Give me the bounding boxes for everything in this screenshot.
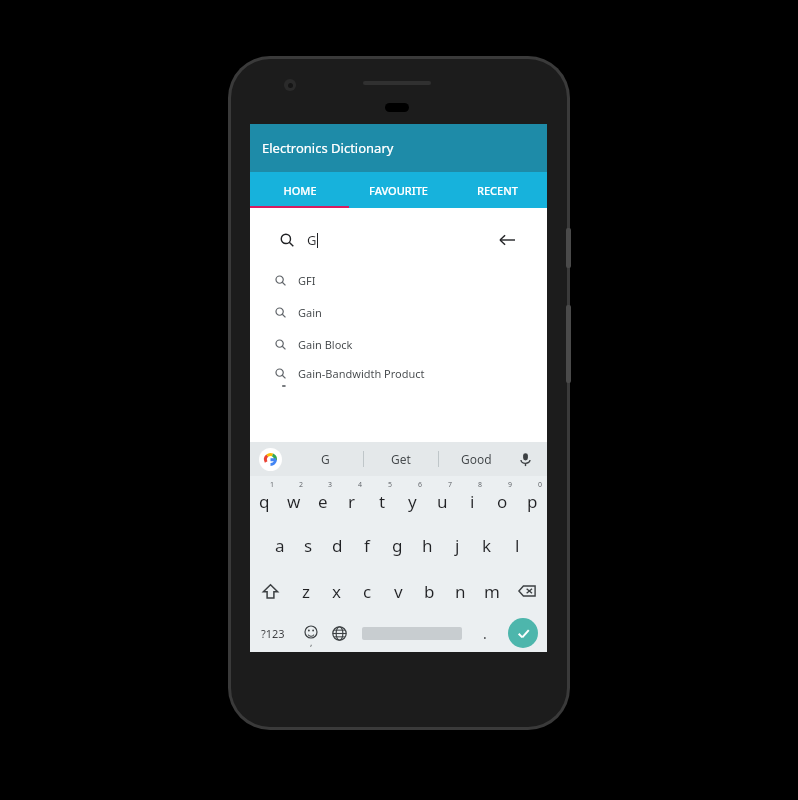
staticText: r (348, 490, 356, 513)
staticText: y (408, 490, 417, 513)
button[interactable]: c (352, 568, 383, 614)
staticText: h (422, 534, 433, 557)
button[interactable]: m (476, 568, 507, 614)
staticText: d (332, 534, 343, 557)
staticText: a (275, 534, 285, 557)
button[interactable]: u (427, 476, 457, 522)
staticText: 3 (328, 480, 333, 490)
button[interactable]: Voice input (515, 449, 535, 469)
button[interactable]: Back (496, 229, 518, 251)
staticText: 9 (508, 480, 513, 490)
button[interactable]: q (250, 476, 279, 522)
button[interactable]: GFI (259, 264, 533, 296)
button[interactable]: Get (364, 442, 438, 476)
button[interactable]: v (383, 568, 414, 614)
button[interactable]: h (412, 522, 442, 568)
button[interactable]: l (502, 522, 532, 568)
button[interactable]: f (352, 522, 382, 568)
button[interactable]: d (323, 522, 352, 568)
staticText: g (392, 534, 403, 557)
staticText: , (310, 636, 313, 648)
button[interactable]: Gain Block (259, 328, 533, 360)
button[interactable]: . (470, 614, 499, 652)
button[interactable]: p (517, 476, 547, 522)
staticText: b (424, 580, 435, 603)
button[interactable]: i (457, 476, 487, 522)
staticText: 8 (478, 480, 483, 490)
button[interactable]: k (472, 522, 502, 568)
staticText: 0 (538, 480, 543, 490)
button[interactable]: Shift (250, 568, 290, 614)
staticText: l (515, 534, 520, 557)
button[interactable]: Good (439, 442, 513, 476)
button[interactable]: n (445, 568, 476, 614)
button[interactable]: s (294, 522, 323, 568)
staticText: z (302, 580, 310, 603)
button[interactable]: Gain (259, 296, 533, 328)
button[interactable]: Backspace (507, 568, 547, 614)
button[interactable]: Google (259, 448, 282, 471)
button[interactable]: t (367, 476, 397, 522)
staticText: o (497, 490, 508, 513)
staticText: c (363, 580, 372, 603)
button[interactable]: RECENT (448, 172, 547, 208)
button[interactable]: w (279, 476, 308, 522)
staticText: 2 (299, 480, 304, 490)
button[interactable]: Electronics Dictionary (250, 124, 547, 172)
staticText: 4 (358, 480, 363, 490)
button[interactable]: j (442, 522, 472, 568)
staticText: HOME (283, 183, 317, 198)
staticText: RECENT (477, 183, 518, 198)
button[interactable]: ?123 (250, 614, 296, 652)
button[interactable]: r (337, 476, 367, 522)
staticText: t (379, 490, 386, 513)
staticText: p (527, 490, 538, 513)
staticText: Gain-Bandwidth Product (298, 366, 425, 381)
staticText: Get (391, 451, 411, 467)
staticText: u (437, 490, 448, 513)
button[interactable]: G (264, 220, 532, 260)
button[interactable]: b (414, 568, 445, 614)
button[interactable]: x (321, 568, 352, 614)
staticText: 5 (388, 480, 393, 490)
staticText: 7 (448, 480, 453, 490)
staticText: Gain Block (298, 337, 353, 352)
button[interactable]: y (397, 476, 427, 522)
button[interactable]: G (288, 442, 363, 476)
staticText: GFI (298, 273, 316, 288)
staticText: 1 (270, 480, 275, 490)
button[interactable]: Space (354, 614, 470, 652)
staticText: x (332, 580, 341, 603)
staticText: j (455, 534, 460, 557)
staticText: n (455, 580, 466, 603)
button[interactable]: g (382, 522, 412, 568)
staticText: e (318, 490, 328, 513)
staticText: v (394, 580, 403, 603)
staticText: w (287, 490, 301, 513)
button[interactable]: Change language (325, 614, 354, 652)
staticText: i (470, 490, 475, 513)
staticText: . (483, 624, 487, 643)
staticText: ?123 (261, 626, 285, 641)
staticText: 6 (418, 480, 423, 490)
staticText: FAVOURITE (369, 183, 428, 198)
button[interactable]: Gain-Bandwidth Product (259, 360, 533, 386)
button[interactable]: FAVOURITE (349, 172, 448, 208)
staticText: Gain (298, 305, 322, 320)
staticText: k (482, 534, 492, 557)
staticText: Good (461, 451, 492, 467)
button[interactable]: Enter (499, 614, 547, 652)
button[interactable]: o (487, 476, 517, 522)
staticText: f (364, 534, 370, 557)
staticText: s (304, 534, 313, 557)
staticText: Electronics Dictionary (262, 139, 394, 157)
button[interactable]: Emoji (296, 614, 325, 652)
button[interactable]: e (308, 476, 337, 522)
staticText: G (307, 231, 317, 249)
button[interactable]: z (290, 568, 321, 614)
button[interactable]: HOME (250, 172, 349, 208)
staticText: G (321, 451, 330, 467)
staticText: m (484, 580, 500, 603)
staticText: q (259, 490, 270, 513)
button[interactable]: a (265, 522, 294, 568)
